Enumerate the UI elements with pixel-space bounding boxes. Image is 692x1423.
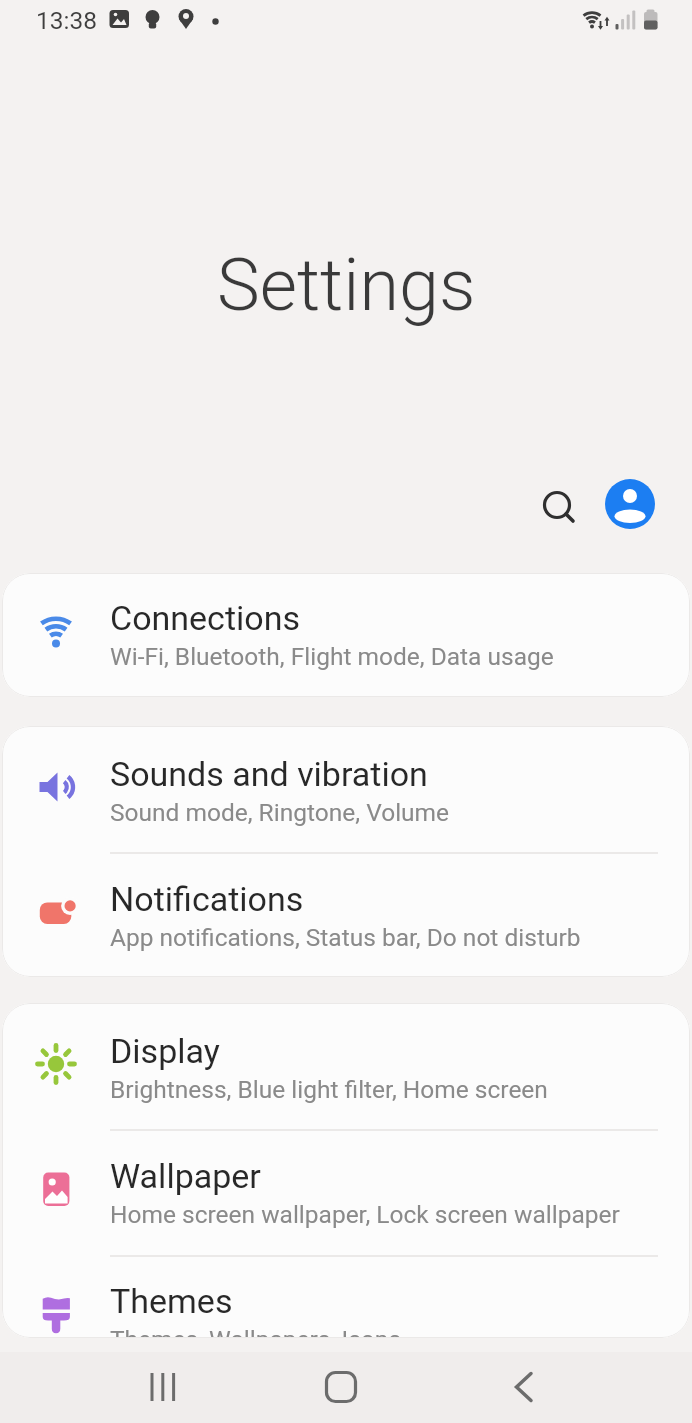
staticText: Sounds and vibration (110, 754, 428, 794)
button[interactable] (317, 1363, 365, 1411)
button[interactable]: Notifications (2, 852, 690, 977)
button[interactable]: Display (2, 1003, 690, 1129)
staticText: Settings (217, 243, 476, 327)
staticText: Brightness, Blue light filter, Home scre… (110, 1075, 548, 1104)
button[interactable] (139, 1363, 187, 1411)
button[interactable] (500, 1363, 548, 1411)
staticText: Themes (110, 1281, 233, 1321)
staticText: Themes, Wallpapers, Icons (110, 1325, 402, 1338)
staticText: App notifications, Status bar, Do not di… (110, 923, 581, 952)
staticText: Connections (110, 598, 301, 638)
button[interactable]: Sounds and vibration (2, 726, 690, 852)
staticText: Wi-Fi, Bluetooth, Flight mode, Data usag… (110, 642, 554, 671)
button[interactable]: Themes (2, 1255, 690, 1338)
button[interactable]: Wallpaper (2, 1129, 690, 1255)
button[interactable]: Connections (2, 573, 690, 697)
staticText: Sound mode, Ringtone, Volume (110, 798, 450, 827)
staticText: Display (110, 1031, 220, 1071)
staticText: Home screen wallpaper, Lock screen wallp… (110, 1200, 620, 1229)
staticText: Wallpaper (110, 1156, 261, 1196)
button[interactable] (605, 479, 655, 529)
staticText: 13:38 (36, 6, 98, 35)
staticText: Notifications (110, 879, 304, 919)
button[interactable] (534, 481, 582, 529)
